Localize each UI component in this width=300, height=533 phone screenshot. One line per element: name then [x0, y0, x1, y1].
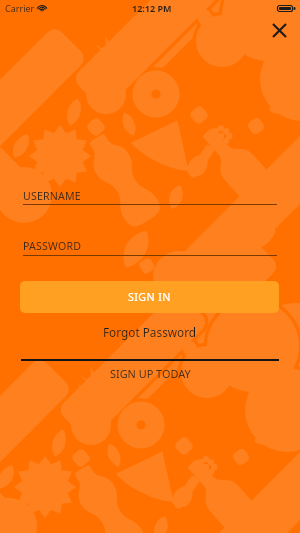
button[interactable]: SIGN IN	[20, 281, 279, 313]
staticText: 12:12 PM	[132, 2, 172, 14]
staticText: PASSWORD	[23, 239, 82, 253]
staticText: Carrier	[5, 2, 35, 14]
staticText: USERNAME	[23, 189, 81, 203]
button[interactable]: Close	[265, 16, 293, 44]
staticText: Forgot Password	[103, 324, 197, 340]
button[interactable]: SIGN UP TODAY	[0, 366, 300, 381]
staticText: SIGN UP TODAY	[110, 366, 191, 381]
button[interactable]: Forgot Password	[0, 323, 300, 340]
staticText: SIGN IN	[128, 290, 171, 305]
